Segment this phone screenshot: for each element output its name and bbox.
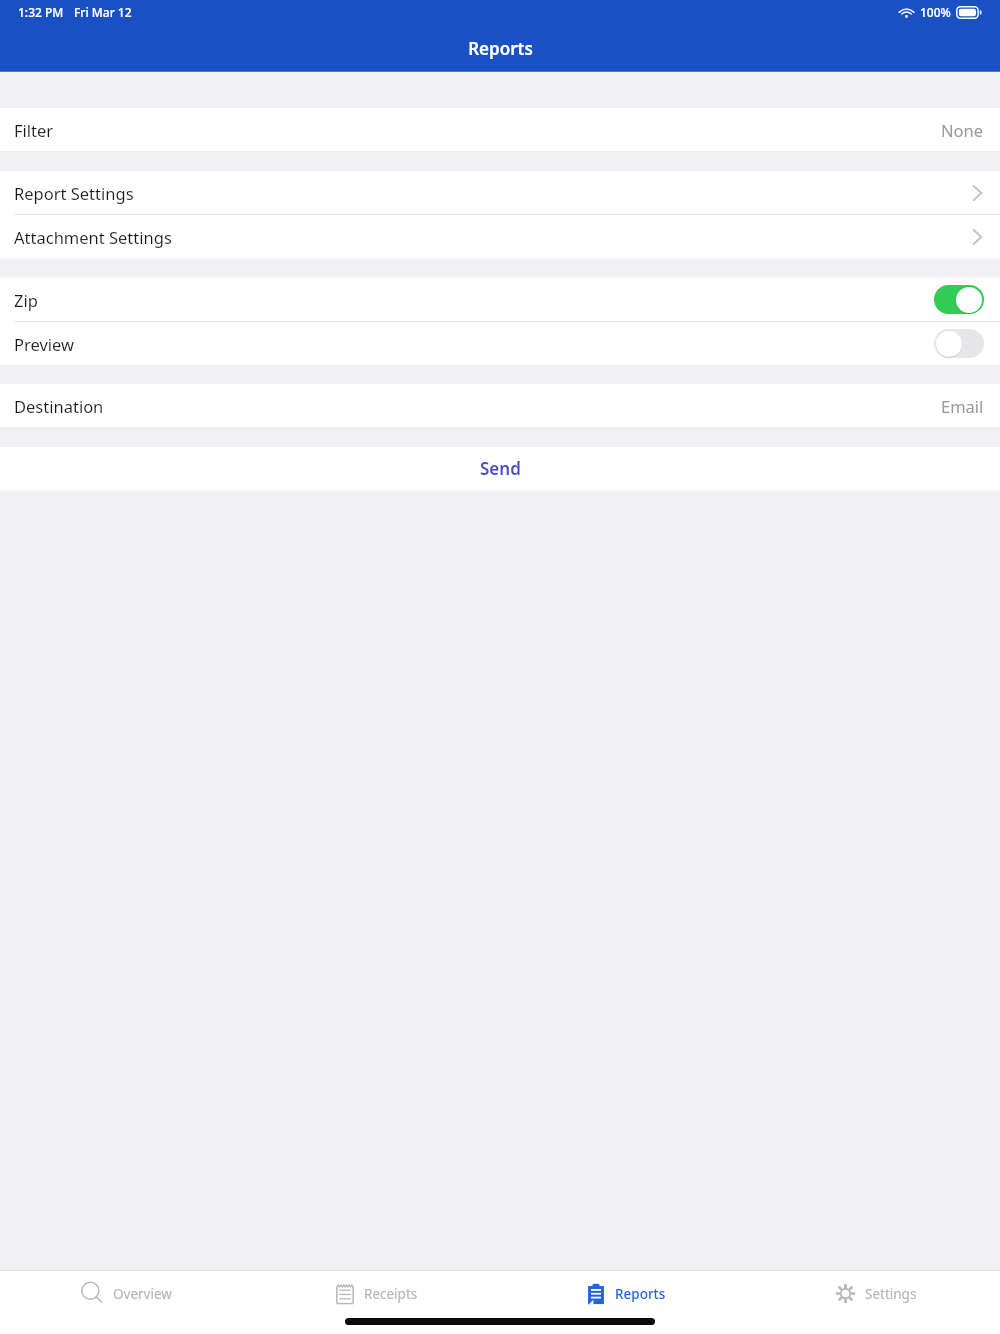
staticText: Attachment Settings: [14, 226, 172, 248]
staticText: Overview: [113, 1285, 172, 1303]
staticText: Report Settings: [14, 182, 134, 204]
button[interactable]: Filter: [0, 108, 1000, 151]
staticText: Email: [941, 395, 984, 417]
staticText: None: [941, 119, 984, 141]
button[interactable]: Toggle off: [934, 329, 984, 358]
button[interactable]: Attachment Settings: [0, 215, 1000, 258]
button[interactable]: Toggle on: [934, 285, 984, 314]
staticText: 100%: [920, 4, 951, 20]
staticText: Settings: [865, 1285, 917, 1303]
button[interactable]: Overview: [0, 1271, 250, 1316]
button[interactable]: Report Settings: [0, 171, 1000, 214]
staticText: Receipts: [364, 1285, 418, 1303]
staticText: Reports: [615, 1285, 666, 1303]
button[interactable]: Send: [0, 447, 1000, 490]
staticText: 1:32 PM: [18, 4, 64, 20]
button[interactable]: Reports: [500, 1271, 750, 1316]
staticText: Destination: [14, 395, 104, 417]
button[interactable]: Settings: [750, 1271, 1000, 1316]
staticText: Reports: [468, 37, 533, 60]
button[interactable]: Destination: [0, 384, 1000, 427]
staticText: Filter: [14, 119, 54, 141]
staticText: Fri Mar 12: [74, 4, 132, 20]
staticText: Preview: [14, 333, 75, 355]
staticText: Zip: [14, 289, 38, 311]
button[interactable]: Receipts: [250, 1271, 500, 1316]
staticText: Send: [480, 457, 521, 480]
